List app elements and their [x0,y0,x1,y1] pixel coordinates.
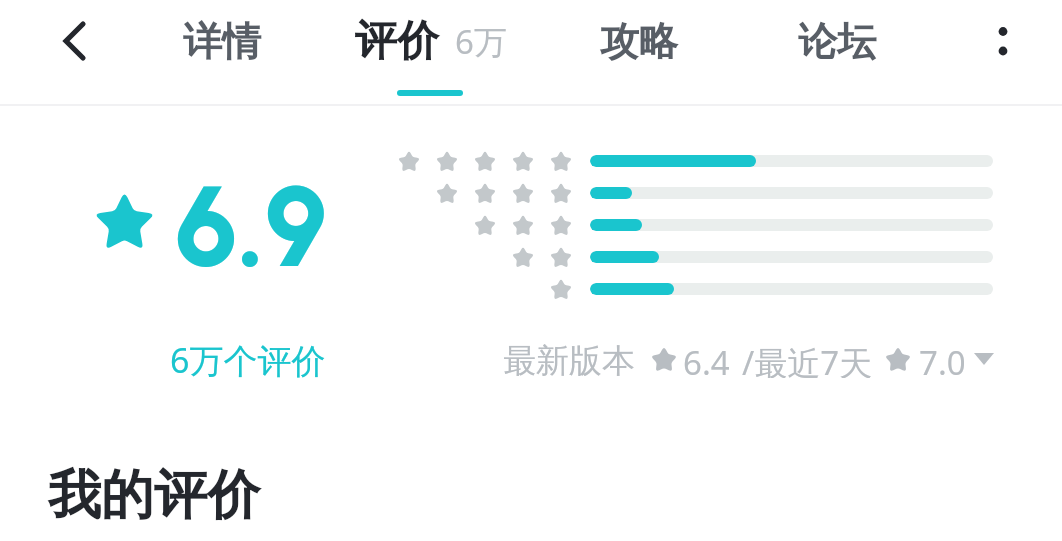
staticText: 评价 [355,15,439,68]
button[interactable]: Back [43,11,103,71]
staticText: 6万 [455,19,507,64]
button[interactable]: 最新版本 [503,340,994,378]
staticText: 我的评价 [48,462,260,529]
staticText: 6.4 [683,340,730,378]
staticText: 最新版本 [503,340,635,378]
staticText: 6万个评价 [170,337,326,381]
staticText: /最近7天 [742,340,873,378]
button[interactable]: 1 star ratings [396,274,996,304]
button[interactable]: 攻略 [579,8,699,74]
staticText: 论坛 [798,17,876,66]
button[interactable]: 详情 [162,8,282,74]
button[interactable]: 论坛 [777,8,897,74]
button[interactable]: 3 star ratings [396,210,996,240]
staticText: 7.0 [919,340,966,378]
staticText: 详情 [183,17,261,66]
button[interactable]: More options [972,11,1032,71]
button[interactable]: 评价 [355,6,507,76]
staticText: 攻略 [600,17,678,66]
button[interactable]: 2 star ratings [396,242,996,272]
button[interactable]: 4 star ratings [396,178,996,208]
button[interactable]: 6万个评价 [120,337,376,381]
button[interactable]: 5 star ratings [396,146,996,176]
staticText: 6.9 [175,159,328,295]
